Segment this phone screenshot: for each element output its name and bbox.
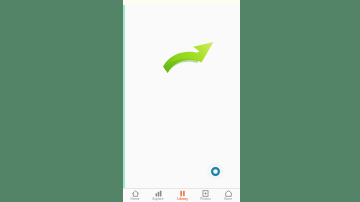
- button[interactable]: Home: [124, 189, 146, 202]
- button[interactable]: Photos: [194, 189, 216, 202]
- button[interactable]: Explore: [147, 189, 169, 202]
- button[interactable]: Assistant: [207, 163, 224, 180]
- staticText: Store: [224, 197, 232, 201]
- staticText: Photos: [200, 197, 211, 201]
- button[interactable]: Store: [217, 189, 239, 202]
- staticText: Library: [177, 197, 188, 201]
- staticText: Home: [130, 197, 140, 201]
- button[interactable]: Library: [171, 189, 193, 202]
- staticText: Explore: [152, 197, 164, 201]
